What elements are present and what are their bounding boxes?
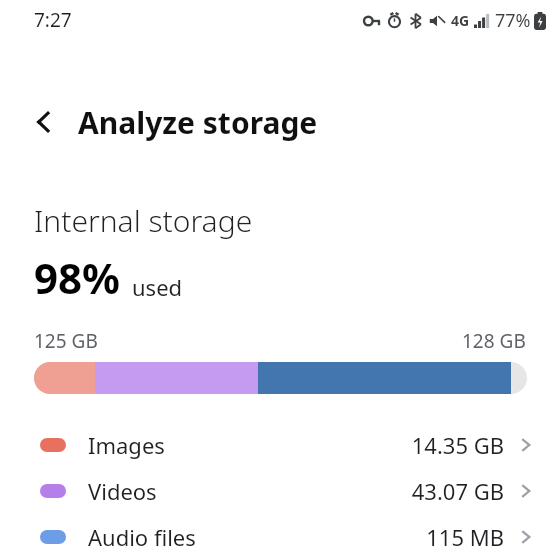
staticText: Images (88, 430, 165, 460)
button[interactable]: Images (0, 422, 560, 468)
staticText: Videos (88, 476, 157, 506)
staticText: 43.07 GB (411, 476, 504, 506)
staticText: 128 GB (462, 328, 526, 354)
staticText: Analyze storage (78, 102, 318, 143)
staticText: 7:27 (34, 7, 72, 33)
staticText: Audio files (88, 522, 196, 552)
staticText: 77% (495, 8, 531, 33)
staticText: Internal storage (34, 200, 253, 241)
button[interactable]: Back (22, 100, 66, 144)
staticText: 98% (34, 249, 120, 306)
button[interactable]: Audio files (0, 514, 560, 560)
staticText: 4G (451, 11, 470, 30)
staticText: 14.35 GB (411, 430, 504, 460)
staticText: 125 GB (34, 328, 98, 354)
button[interactable]: Videos (0, 468, 560, 514)
staticText: used (132, 272, 183, 302)
staticText: 115 MB (426, 522, 504, 552)
